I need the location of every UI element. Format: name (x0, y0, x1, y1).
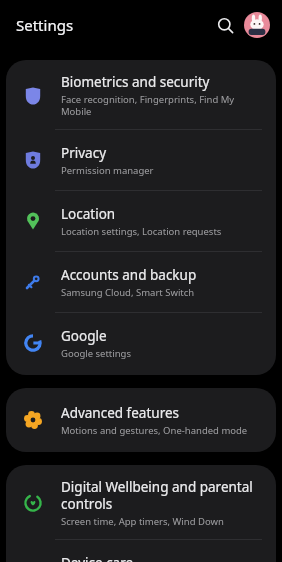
button[interactable]: Privacy (6, 130, 276, 191)
staticText: Accounts and backup (61, 266, 197, 284)
button[interactable]: Google (6, 313, 276, 373)
staticText: Motions and gestures, One-handed mode (61, 424, 248, 437)
staticText: Settings (16, 15, 74, 35)
staticText: Advanced features (61, 404, 180, 422)
staticText: Google (61, 327, 107, 345)
staticText: Google settings (61, 347, 132, 360)
button[interactable]: Biometrics and security (6, 62, 276, 130)
button[interactable]: Account (244, 12, 270, 38)
staticText: Samsung Cloud, Smart Switch (61, 286, 195, 299)
staticText: Biometrics and security (61, 73, 210, 91)
staticText: Location settings, Location requests (61, 225, 222, 238)
staticText: Privacy (61, 144, 107, 162)
button[interactable]: Device care (6, 540, 276, 562)
button[interactable]: Advanced features (6, 390, 276, 450)
button[interactable]: Location (6, 191, 276, 252)
staticText: Device care (61, 554, 134, 562)
button[interactable]: Digital Wellbeing and parental controls (6, 467, 276, 540)
staticText: Digital Wellbeing and parental controls (61, 478, 262, 513)
button[interactable]: Search (208, 8, 242, 42)
staticText: Face recognition, Fingerprints, Find My … (61, 93, 262, 118)
button[interactable]: Accounts and backup (6, 252, 276, 313)
staticText: Permission manager (61, 164, 154, 177)
staticText: Screen time, App timers, Wind Down (61, 515, 224, 528)
staticText: Location (61, 205, 116, 223)
